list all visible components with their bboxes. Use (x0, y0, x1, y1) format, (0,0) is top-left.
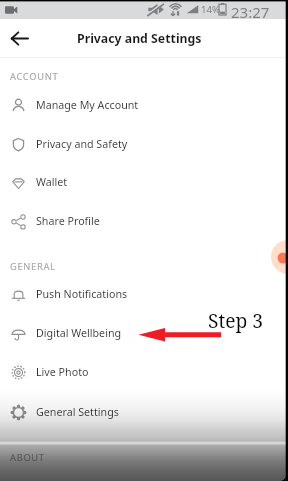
button[interactable]: Digital Wellbeing (0, 314, 288, 352)
staticText: Share Profile (36, 214, 100, 229)
staticText: ABOUT (10, 451, 45, 464)
staticText: Digital Wellbeing (36, 326, 122, 341)
button[interactable]: Back (8, 27, 31, 50)
staticText: Privacy and Settings (77, 30, 202, 47)
button[interactable]: Share Profile (0, 202, 288, 240)
button[interactable]: Privacy and Safety (0, 125, 288, 163)
staticText: Push Notifications (36, 287, 128, 302)
button[interactable]: Wallet (0, 163, 288, 201)
staticText: General Settings (36, 405, 119, 420)
button[interactable]: Live Photo (0, 353, 288, 391)
staticText: GENERAL (10, 260, 56, 273)
staticText: Live Photo (36, 365, 89, 380)
button[interactable]: Manage My Account (0, 86, 288, 124)
staticText: 14% (201, 3, 220, 16)
button[interactable]: Push Notifications (0, 275, 288, 313)
staticText: Manage My Account (36, 98, 139, 113)
staticText: 23:27 (231, 2, 270, 21)
button[interactable]: General Settings (0, 393, 288, 431)
staticText: Wallet (36, 175, 68, 190)
staticText: Step 3 (208, 307, 263, 333)
staticText: ACCOUNT (10, 70, 59, 83)
staticText: Privacy and Safety (36, 137, 128, 152)
